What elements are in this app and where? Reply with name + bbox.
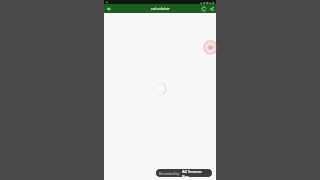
button[interactable]: Share xyxy=(208,5,215,12)
button[interactable]: Recorded by xyxy=(156,169,212,177)
button[interactable]: Navigate up xyxy=(105,5,112,12)
staticText: AZ Screen Rec xyxy=(182,169,209,177)
button[interactable]: calculator xyxy=(151,6,170,11)
staticText: Recorded by xyxy=(159,171,180,176)
button[interactable]: Refresh xyxy=(200,5,207,12)
button[interactable]: Recording controls xyxy=(203,40,218,55)
staticText: calculator xyxy=(151,6,170,11)
